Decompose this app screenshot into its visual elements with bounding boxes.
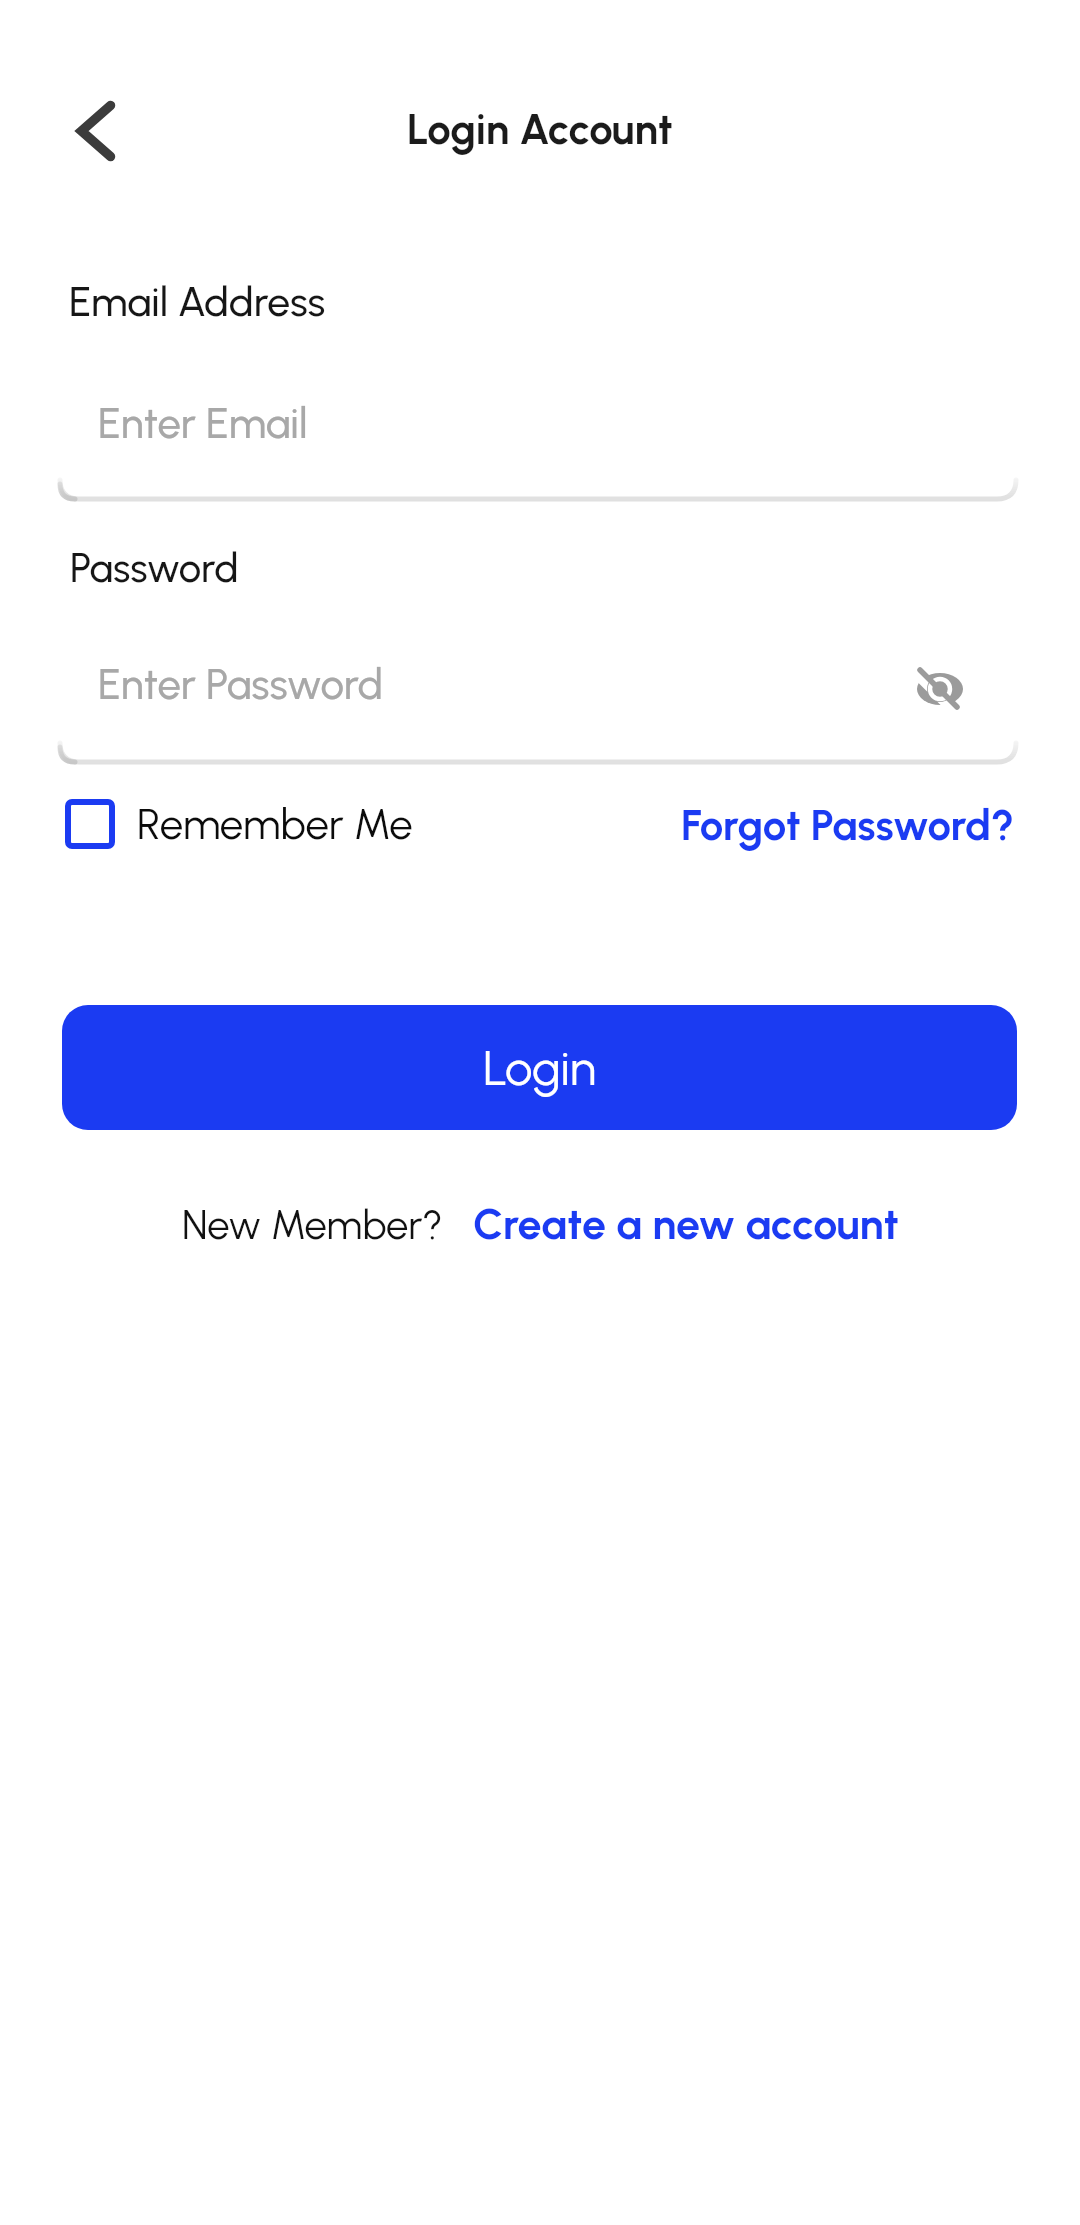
button[interactable] [58,89,134,173]
staticText: Create a new account [473,1198,899,1250]
staticText: Enter Email [98,398,308,448]
staticText: Forgot Password? [681,800,1015,850]
staticText: Login Account [407,104,673,154]
staticText: Email Address [69,277,326,326]
button[interactable]: Remember Me [65,799,413,849]
button[interactable] [915,666,965,712]
staticText: Login [483,1038,597,1097]
staticText: Enter Password [98,659,383,709]
button[interactable]: Forgot Password? [681,800,1015,850]
button[interactable]: Login [62,1005,1017,1130]
staticText: Remember Me [137,799,413,849]
staticText: New Member? [182,1201,443,1249]
staticText: Password [70,544,239,592]
button[interactable]: Create a new account [473,1198,899,1250]
